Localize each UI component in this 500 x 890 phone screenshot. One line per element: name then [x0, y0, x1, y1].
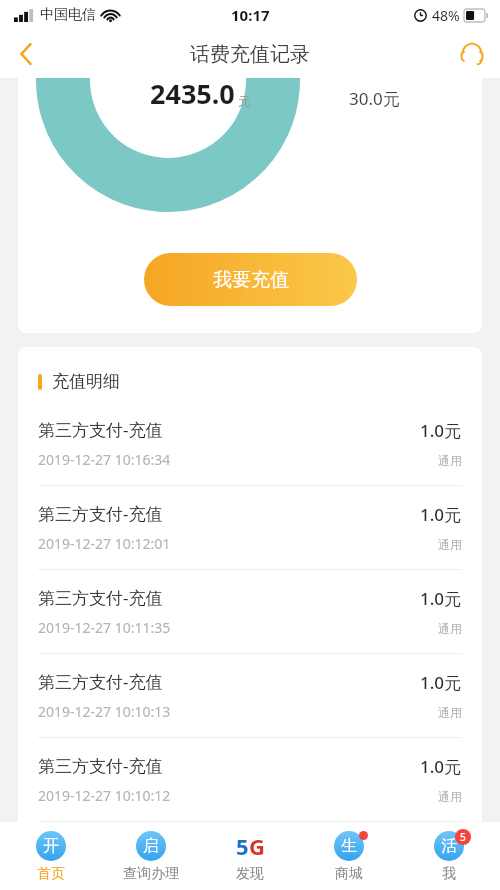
button[interactable]: 发现 [202, 822, 298, 890]
staticText: 2019-12-27 10:16:34 [38, 450, 171, 469]
staticText: 2019-12-27 10:10:13 [38, 702, 171, 721]
staticText: 首页 [37, 865, 65, 883]
staticText: 元 [238, 93, 251, 109]
staticText: 1.0元 [420, 419, 462, 442]
staticText: 充值明细 [52, 371, 120, 392]
staticText: 2019-12-27 10:11:35 [38, 618, 171, 637]
staticText: 第三方支付-充值 [38, 502, 163, 525]
staticText: 通用 [438, 705, 462, 720]
staticText: 1.0元 [420, 587, 462, 610]
button[interactable]: 商城 [301, 822, 397, 890]
staticText: 第三方支付-充值 [38, 586, 163, 609]
staticText: 5 [236, 831, 249, 861]
button[interactable]: 查询办理 [103, 822, 199, 890]
button[interactable]: 第三方支付-充值 [18, 570, 482, 654]
staticText: 话费充值记录 [190, 42, 310, 67]
staticText: 查询办理 [123, 865, 179, 883]
staticText: 5 [460, 830, 466, 844]
staticText: 通用 [438, 621, 462, 636]
staticText: 商城 [335, 865, 363, 883]
staticText: 通用 [438, 453, 462, 468]
staticText: 1.0元 [420, 671, 462, 694]
staticText: 10:17 [231, 5, 270, 25]
staticText: 生 [341, 836, 357, 856]
button[interactable]: Customer service [444, 30, 500, 78]
staticText: 第三方支付-充值 [38, 418, 163, 441]
staticText: 通用 [438, 537, 462, 552]
staticText: 2435.0 [150, 78, 235, 112]
staticText: 1.0元 [420, 503, 462, 526]
staticText: 我要充值 [213, 268, 289, 292]
button[interactable]: 第三方支付-充值 [18, 486, 482, 570]
staticText: 开 [43, 836, 59, 856]
button[interactable]: 首页 [3, 822, 99, 890]
button[interactable]: 我要充值 [144, 253, 357, 306]
button[interactable]: Back [0, 30, 52, 78]
staticText: G [249, 831, 265, 861]
button[interactable]: 第三方支付-充值 [18, 738, 482, 822]
staticText: 1.0元 [420, 755, 462, 778]
staticText: 第三方支付-充值 [38, 754, 163, 777]
staticText: 2019-12-27 10:12:01 [38, 534, 171, 553]
staticText: 活 [441, 836, 457, 856]
staticText: 中国电信 [40, 6, 96, 24]
staticText: 第三方支付-充值 [38, 670, 163, 693]
staticText: 48% [432, 6, 460, 25]
staticText: 30.0元 [349, 87, 400, 110]
staticText: 2019-12-27 10:10:12 [38, 786, 171, 805]
button[interactable]: 第三方支付-充值 [18, 402, 482, 486]
staticText: 通用 [438, 789, 462, 804]
staticText: 发现 [236, 865, 264, 883]
staticText: 启 [143, 836, 159, 856]
staticText: 我 [442, 865, 456, 883]
button[interactable]: 第三方支付-充值 [18, 654, 482, 738]
button[interactable]: 我 [401, 822, 497, 890]
